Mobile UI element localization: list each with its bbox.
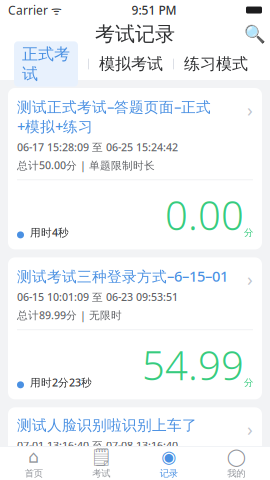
staticText: ›	[247, 97, 253, 122]
staticText: 考试记录	[95, 22, 175, 46]
staticText: 总计50.00分 | 单题限制时长	[17, 158, 155, 172]
staticText: 考试	[92, 468, 110, 479]
staticText: 🗒	[90, 447, 112, 467]
staticText: 模拟考试	[99, 54, 163, 74]
staticText: 分	[244, 377, 253, 388]
staticText: 我的	[227, 468, 245, 479]
staticText: 首页	[25, 468, 43, 479]
staticText: 06-17 15:28:09 至 06-25 15:24:42	[17, 140, 178, 154]
staticText: 9:51 PM	[131, 2, 176, 18]
staticText: 0.00	[165, 188, 244, 241]
button[interactable]: ⌂	[0, 446, 67, 480]
staticText: ⌂	[28, 447, 39, 467]
staticText: 总计50.00分 | 限时60分钟	[17, 456, 145, 471]
staticText: Carrier	[8, 2, 48, 18]
staticText: 🔍	[244, 24, 266, 44]
staticText: 总计89.99分 | 无限时	[17, 308, 122, 322]
button[interactable]: ◯	[202, 446, 270, 480]
staticText: 正式考试	[22, 44, 70, 84]
button[interactable]: 测试考试三种登录方式–6–15–01	[8, 257, 262, 399]
button[interactable]: 练习模式	[184, 54, 248, 74]
staticText: ›	[247, 416, 253, 441]
staticText: 07-01 13:16:40 至 07-08 13:16:40	[17, 438, 178, 452]
staticText: 练习模式	[184, 54, 248, 74]
staticText: 06-15 10:01:09 至 06-23 09:53:51	[17, 290, 178, 304]
staticText: ᯤ	[48, 2, 62, 18]
staticText: 记录	[160, 468, 178, 479]
button[interactable]: 正式考试	[14, 41, 78, 87]
staticText: 测试考试三种登录方式–6–15–01	[17, 266, 228, 286]
staticText: 分	[244, 227, 253, 238]
staticText: 54.99	[142, 338, 244, 391]
button[interactable]: ◉	[135, 446, 202, 480]
button[interactable]: 测试正式考试–答题页面–正式+模拟+练习	[8, 88, 262, 249]
button[interactable]: 🗒	[67, 446, 135, 480]
staticText: 用时2分23秒	[24, 375, 92, 389]
button[interactable]: Search	[240, 20, 270, 48]
button[interactable]: 测试人脸识别啦识别上车了	[8, 407, 262, 480]
staticText: 测试人脸识别啦识别上车了	[17, 416, 197, 434]
staticText: 测试正式考试–答题页面–正式+模拟+练习	[17, 97, 211, 136]
staticText: ◯	[227, 447, 246, 467]
staticText: 用时4秒	[24, 225, 69, 239]
staticText: ›	[247, 266, 253, 291]
staticText: ◉	[161, 447, 176, 467]
button[interactable]: 模拟考试	[99, 54, 163, 74]
